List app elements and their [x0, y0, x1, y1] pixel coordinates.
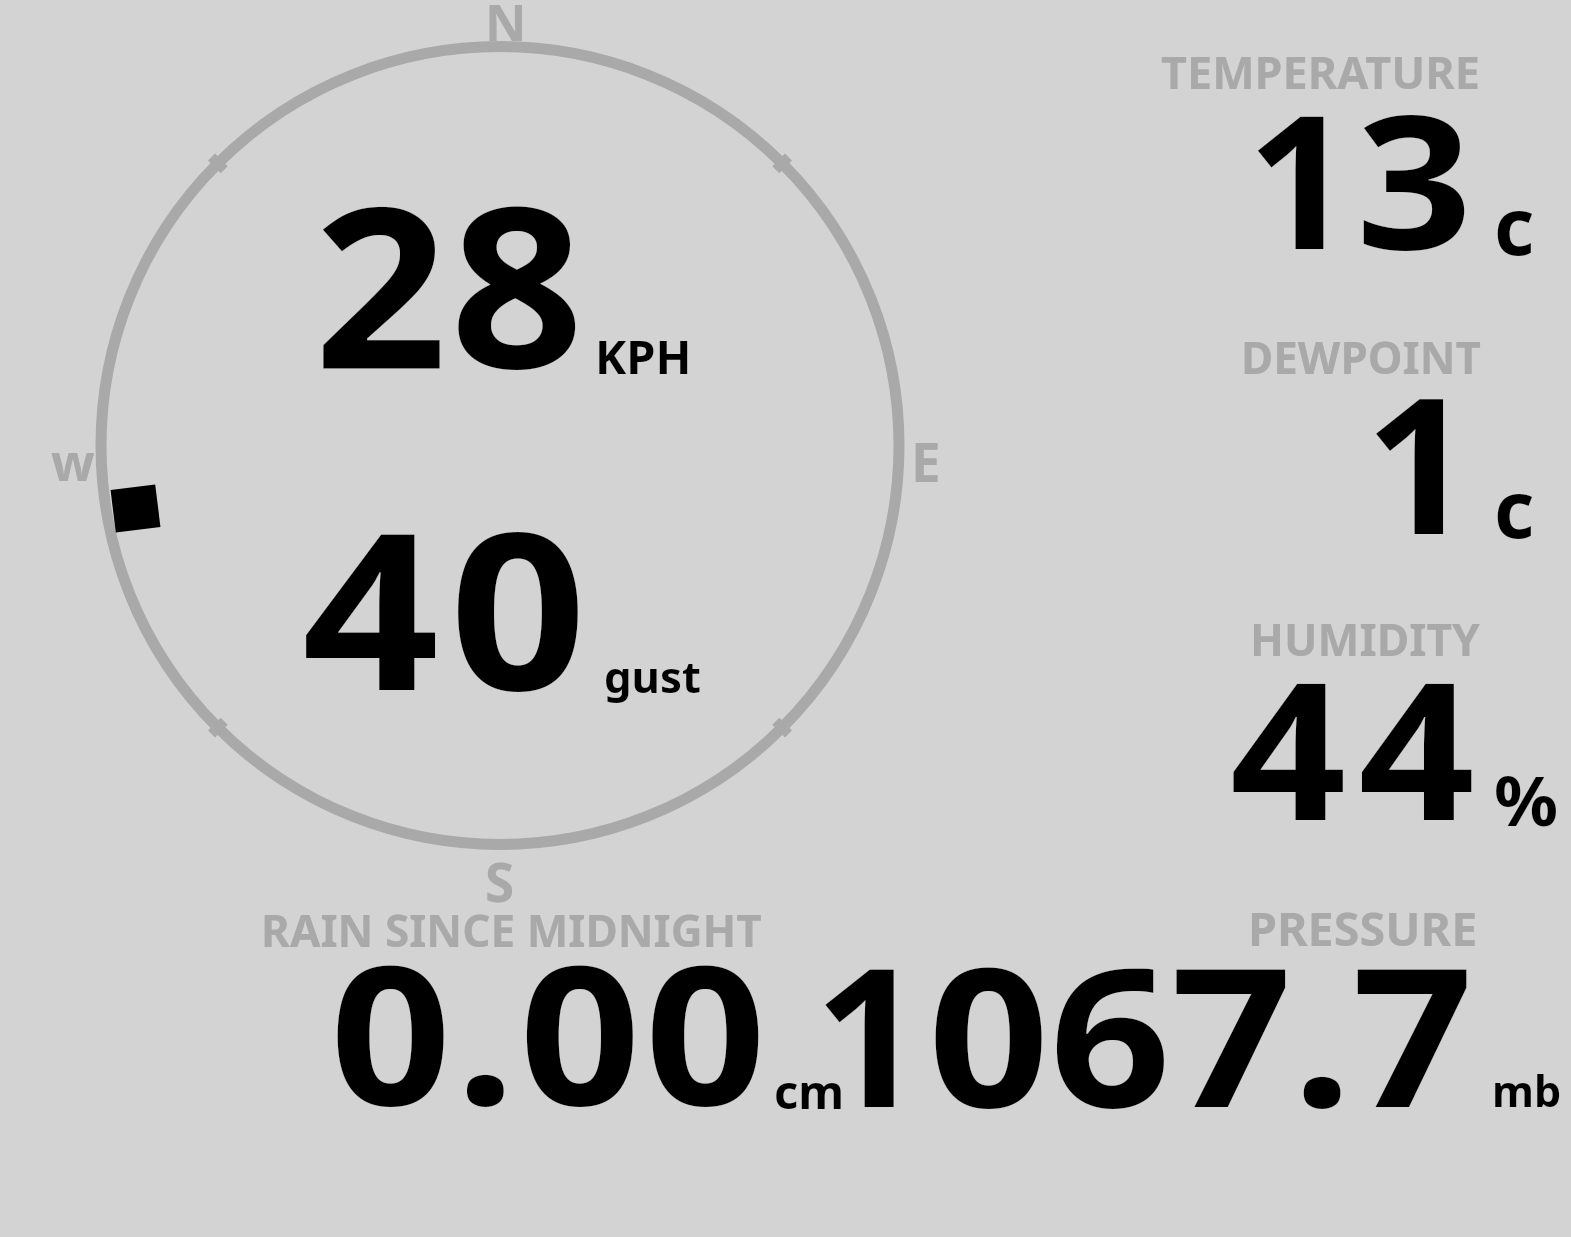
- staticText: E: [911, 425, 941, 497]
- staticText: c: [1494, 172, 1535, 278]
- staticText: c: [1494, 455, 1535, 561]
- staticText: 3: [1356, 51, 1473, 303]
- button[interactable]: Dewpoint 1 C: [1150, 310, 1571, 600]
- staticText: KPH: [595, 324, 692, 388]
- staticText: 0.00: [330, 899, 771, 1162]
- staticText: %: [1494, 752, 1559, 846]
- staticText: PRESSURE: [1248, 896, 1478, 960]
- staticText: w: [51, 426, 95, 495]
- staticText: 1: [1365, 332, 1474, 589]
- button[interactable]: Humidity 44 %: [1150, 600, 1571, 880]
- staticText: 067.7: [928, 901, 1474, 1164]
- staticText: 1: [1247, 51, 1353, 303]
- staticText: 44: [1230, 617, 1488, 876]
- staticText: mb: [1492, 1061, 1562, 1120]
- staticText: HUMIDITY: [1250, 609, 1480, 669]
- staticText: 1: [814, 901, 925, 1164]
- button[interactable]: Rain since midnight 0.00 cm: [240, 890, 860, 1130]
- staticText: N: [485, 0, 527, 55]
- staticText: 28: [314, 131, 587, 433]
- other: Wind direction west: [110, 484, 160, 533]
- staticText: RAIN SINCE MIDNIGHT: [261, 900, 762, 960]
- staticText: 40: [302, 457, 598, 754]
- button[interactable]: Pressure 1067.7 mb: [870, 890, 1571, 1130]
- staticText: TEMPERATURE: [1161, 41, 1480, 102]
- staticText: cm: [774, 1059, 845, 1123]
- staticText: DEWPOINT: [1241, 327, 1481, 387]
- staticText: S: [485, 845, 515, 917]
- button[interactable]: Temperature 13 C: [1150, 30, 1571, 300]
- staticText: gust: [604, 646, 701, 706]
- button[interactable]: Wind speed 28 KPH, gusting 40: [96, 45, 906, 847]
